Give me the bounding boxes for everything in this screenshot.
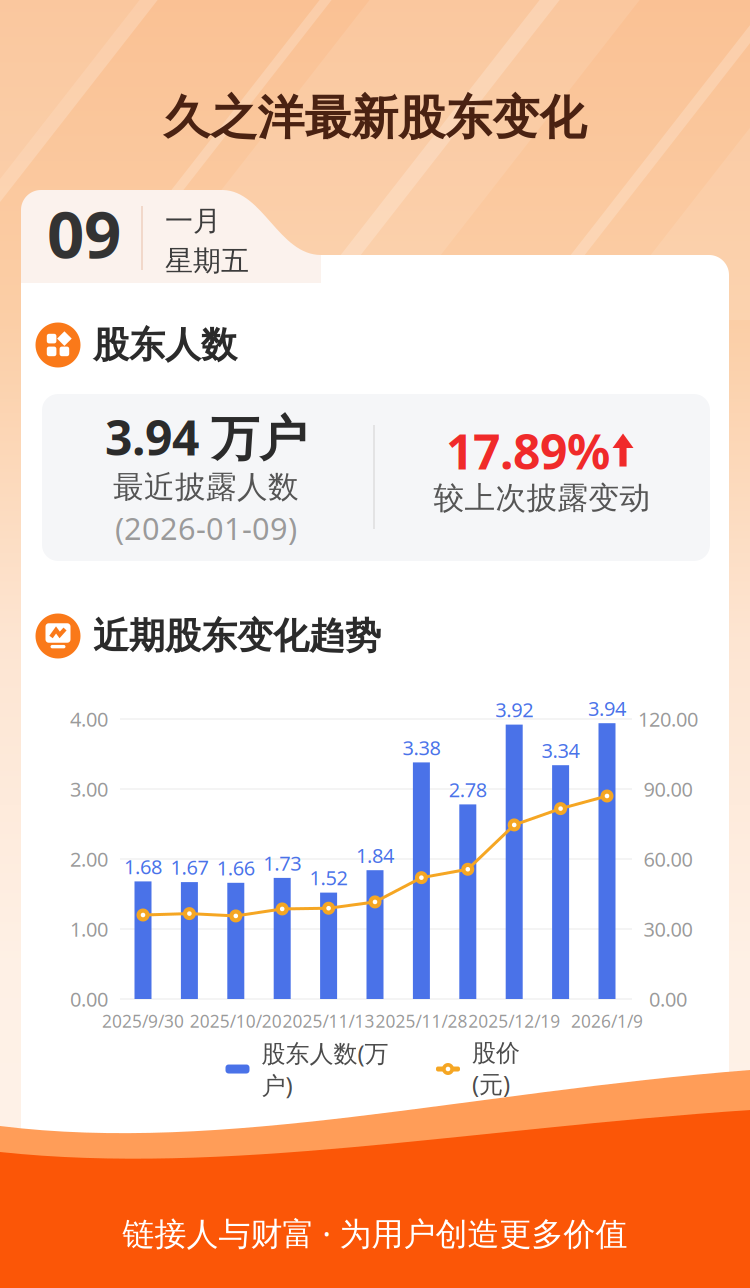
button[interactable]: 近期股东变化趋势 bbox=[35, 613, 80, 658]
staticText: 0.00 bbox=[649, 986, 687, 1012]
staticText: 1.52 bbox=[310, 864, 348, 891]
staticText: 近期股东变化趋势 bbox=[93, 614, 381, 658]
staticText: 30.00 bbox=[643, 916, 692, 942]
staticText: 2025/10/20 bbox=[190, 1009, 282, 1032]
staticText: 1.84 bbox=[356, 842, 394, 868]
staticText: 1.73 bbox=[263, 850, 301, 876]
staticText: 3.94 万户 bbox=[105, 405, 307, 469]
staticText: 一月 bbox=[165, 204, 221, 238]
staticText: 星期五 bbox=[165, 244, 249, 278]
staticText: 股价(元) bbox=[472, 1038, 520, 1100]
staticText: 3.94 bbox=[588, 695, 626, 721]
staticText: 3.34 bbox=[542, 737, 580, 763]
staticText: 最近披露人数 bbox=[113, 468, 299, 506]
staticText: 1.68 bbox=[124, 853, 162, 880]
staticText: 2025/9/30 bbox=[102, 1009, 184, 1032]
staticText: 09 bbox=[47, 190, 121, 276]
staticText: 2026/1/9 bbox=[571, 1009, 643, 1032]
button[interactable]: 股价(元) bbox=[422, 1049, 534, 1089]
staticText: 久之洋最新股东变化 bbox=[163, 89, 586, 147]
button[interactable]: 股东人数(万户) bbox=[220, 1049, 394, 1089]
staticText: 1.66 bbox=[217, 854, 255, 881]
staticText: 17.89% bbox=[446, 419, 610, 483]
staticText: 0.00 bbox=[70, 986, 108, 1012]
staticText: 1.67 bbox=[170, 854, 208, 880]
staticText: 股东人数(万户) bbox=[261, 1037, 388, 1101]
staticText: 链接人与财富 · 为用户创造更多价值 bbox=[122, 1212, 627, 1254]
staticText: 3.92 bbox=[495, 696, 533, 723]
staticText: (2026-01-09) bbox=[115, 508, 297, 548]
staticText: 较上次披露变动 bbox=[433, 479, 650, 517]
staticText: 1.00 bbox=[70, 916, 108, 942]
staticText: 股东人数 bbox=[93, 323, 237, 367]
staticText: 60.00 bbox=[643, 846, 692, 872]
button[interactable]: 股东人数 bbox=[35, 322, 80, 367]
staticText: 3.00 bbox=[70, 776, 108, 802]
staticText: 2.78 bbox=[449, 776, 487, 803]
staticText: 2025/12/19 bbox=[468, 1009, 560, 1032]
staticText: 3.38 bbox=[402, 734, 440, 761]
staticText: 120.00 bbox=[638, 706, 698, 732]
staticText: 2.00 bbox=[70, 846, 108, 872]
staticText: 4.00 bbox=[70, 706, 108, 732]
staticText: 2025/11/28 bbox=[375, 1009, 467, 1032]
staticText: 90.00 bbox=[643, 776, 692, 802]
staticText: 2025/11/13 bbox=[283, 1009, 375, 1032]
